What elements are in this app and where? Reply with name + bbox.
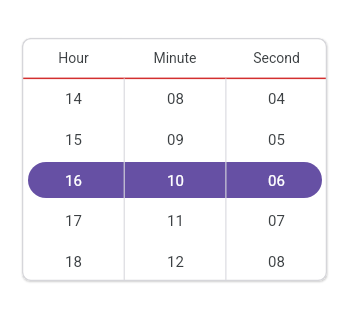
- button[interactable]: 08: [124, 78, 226, 119]
- staticText: 08: [268, 253, 285, 271]
- staticText: 12: [167, 253, 184, 271]
- staticText: 09: [167, 131, 184, 149]
- button[interactable]: 05: [225, 119, 327, 160]
- button[interactable]: 11: [124, 200, 226, 241]
- staticText: 10: [167, 172, 184, 190]
- button[interactable]: 07: [225, 200, 327, 241]
- staticText: 05: [268, 131, 285, 149]
- staticText: 18: [65, 253, 82, 271]
- staticText: Second: [253, 50, 300, 66]
- staticText: 06: [268, 172, 285, 190]
- button[interactable]: 18: [22, 241, 124, 281]
- button[interactable]: 10: [124, 160, 226, 201]
- button[interactable]: 08: [225, 241, 327, 281]
- button[interactable]: Minute: [124, 38, 226, 78]
- button[interactable]: 17: [22, 200, 124, 241]
- button[interactable]: Hour: [22, 38, 124, 78]
- button[interactable]: 15: [22, 119, 124, 160]
- button[interactable]: 16: [22, 160, 124, 201]
- staticText: 08: [167, 90, 184, 108]
- staticText: 04: [268, 90, 285, 108]
- button[interactable]: 06: [225, 160, 327, 201]
- staticText: Minute: [153, 50, 197, 66]
- staticText: 17: [65, 212, 82, 230]
- button[interactable]: 04: [225, 78, 327, 119]
- staticText: 14: [65, 90, 82, 108]
- button[interactable]: Second: [225, 38, 327, 78]
- staticText: 11: [167, 212, 184, 230]
- staticText: 07: [268, 212, 285, 230]
- staticText: Hour: [58, 50, 89, 66]
- button[interactable]: 14: [22, 78, 124, 119]
- button[interactable]: 09: [124, 119, 226, 160]
- button[interactable]: 12: [124, 241, 226, 281]
- staticText: 16: [65, 172, 82, 190]
- staticText: 15: [65, 131, 82, 149]
